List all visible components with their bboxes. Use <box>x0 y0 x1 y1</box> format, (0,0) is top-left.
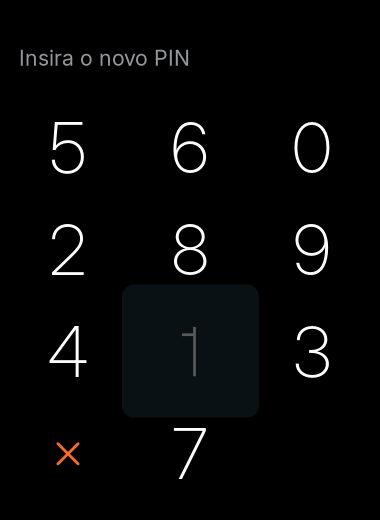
button[interactable]: 8 <box>129 199 251 301</box>
button[interactable]: 6 <box>129 97 251 199</box>
staticText: 2 <box>49 208 87 292</box>
staticText: 0 <box>292 106 332 190</box>
staticText: Insira o novo PIN <box>19 45 190 71</box>
button[interactable]: 9 <box>251 199 373 301</box>
staticText: 8 <box>171 208 208 292</box>
button[interactable]: 4 <box>7 301 129 403</box>
button[interactable]: 5 <box>7 97 129 199</box>
button[interactable]: 1 <box>129 301 251 403</box>
button[interactable]: 0 <box>251 97 373 199</box>
button[interactable]: 7 <box>129 403 251 505</box>
button[interactable]: 3 <box>251 301 373 403</box>
staticText: 3 <box>293 310 331 394</box>
staticText: 9 <box>293 208 331 292</box>
staticText: 7 <box>172 412 208 496</box>
staticText: 6 <box>171 106 209 190</box>
button[interactable]: Apagar <box>7 403 129 505</box>
staticText: 5 <box>49 106 86 190</box>
button[interactable]: 2 <box>7 199 129 301</box>
staticText: 4 <box>47 310 88 394</box>
